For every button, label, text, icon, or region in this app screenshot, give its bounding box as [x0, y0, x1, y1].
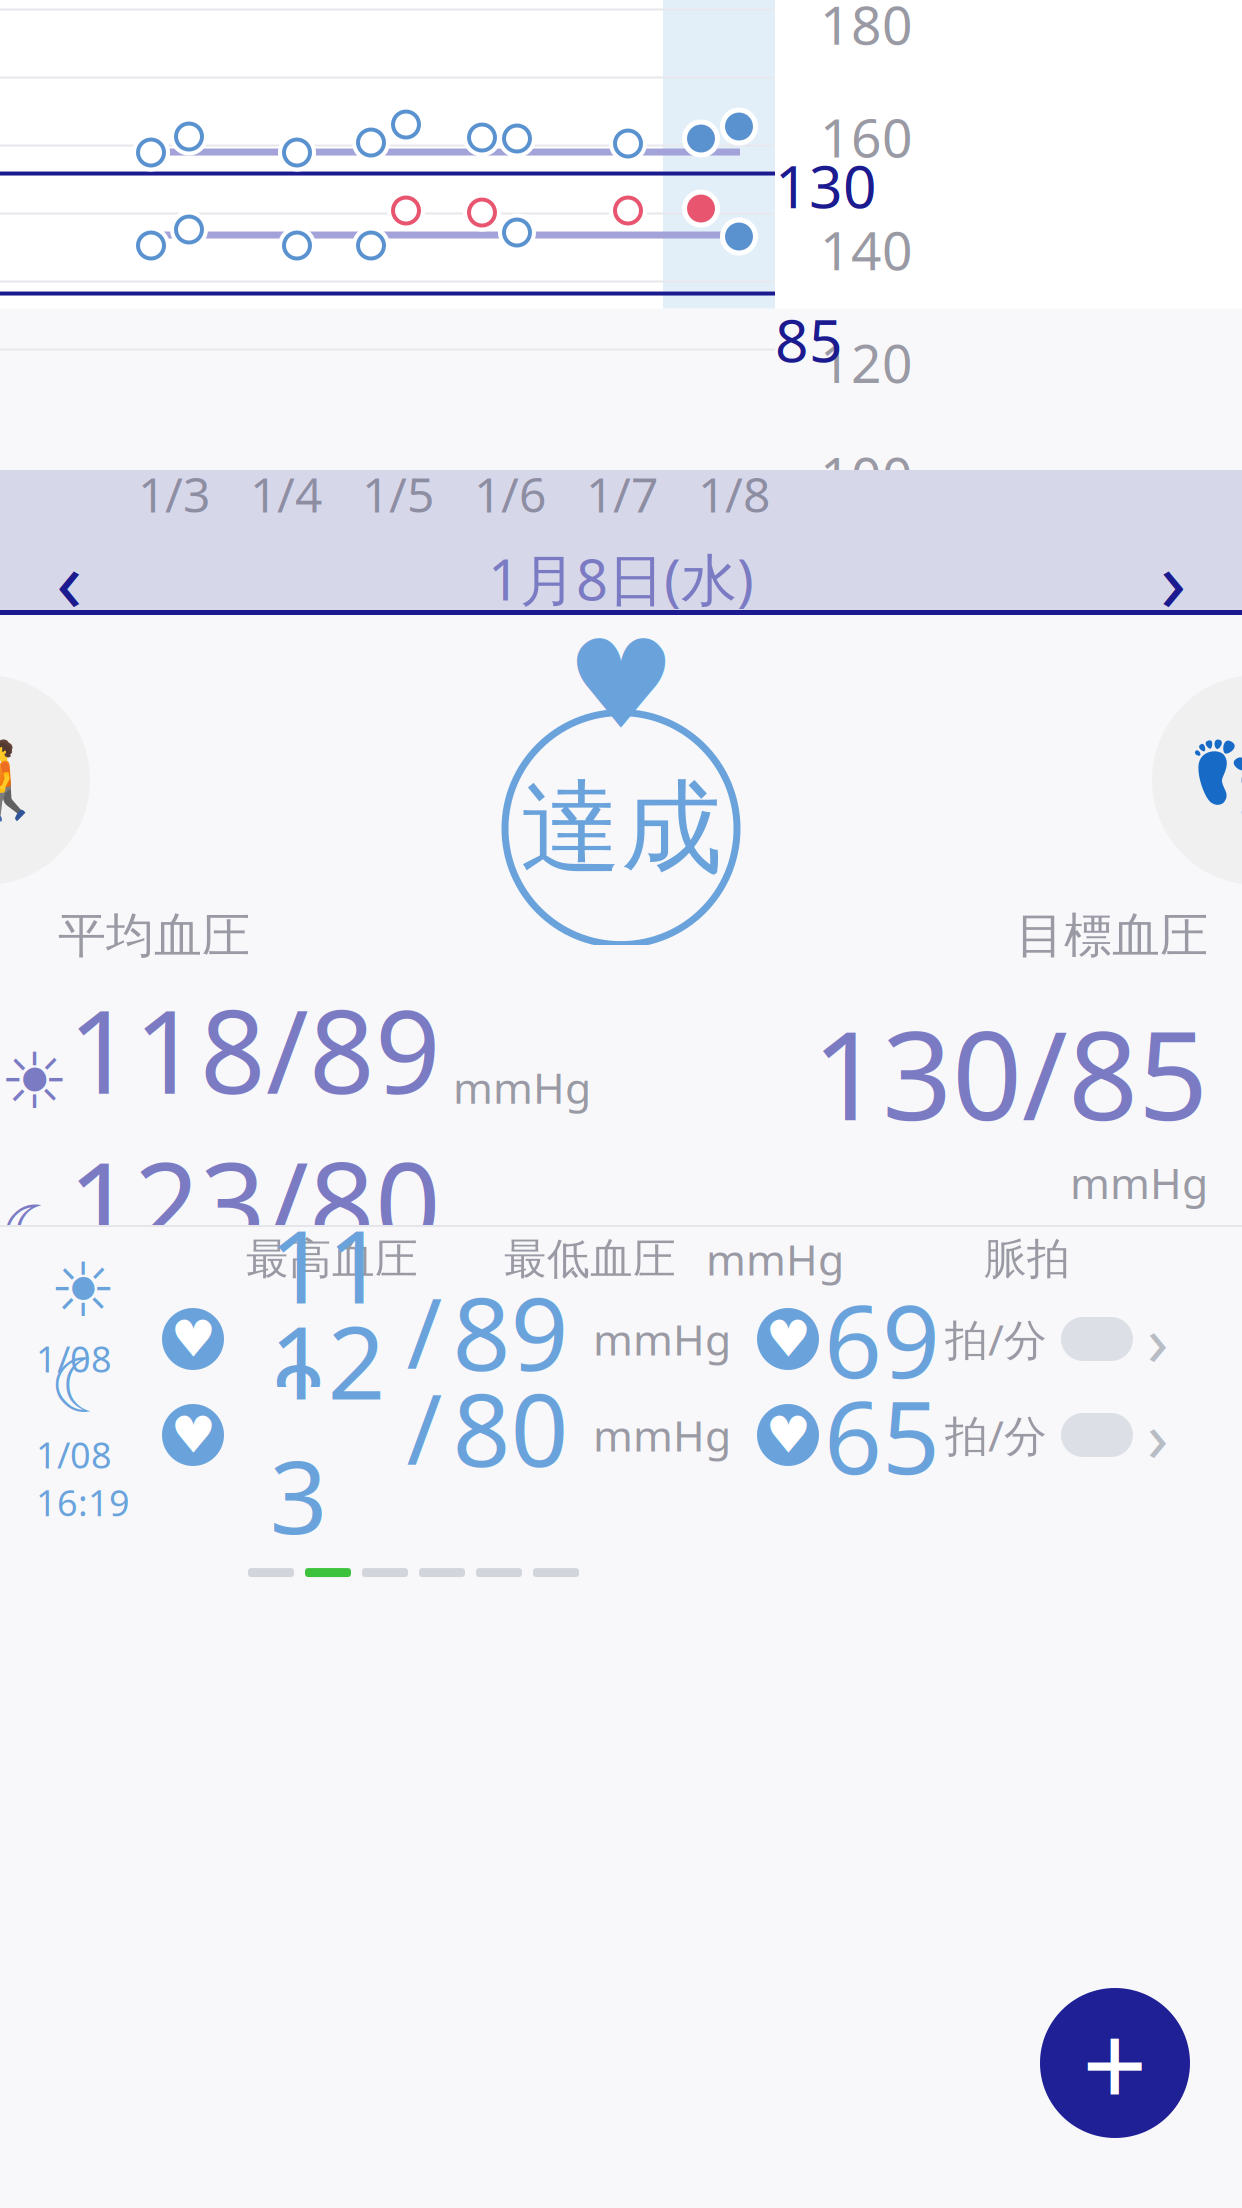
staticText: 69 [824, 1272, 940, 1406]
staticText: 最低血圧 [504, 1233, 676, 1285]
staticText: 85 [775, 300, 843, 378]
staticText: 拍/分 [945, 1407, 1047, 1463]
staticText: 最高血圧 [246, 1233, 418, 1285]
staticText: 1/08 13:00 [36, 1335, 130, 1430]
staticText: 123/80 [68, 1125, 441, 1278]
staticText: mmHg [593, 1407, 731, 1463]
staticText: 1/3 [138, 462, 210, 526]
staticText: 目標血圧 [1016, 906, 1208, 965]
staticText: 160 [820, 101, 913, 172]
staticText: › [1160, 522, 1186, 635]
staticText: 65 [824, 1368, 940, 1502]
staticText: 123 [269, 1293, 385, 1562]
button[interactable]: ☾ [0, 1387, 1242, 1483]
staticText: ☀ [49, 1248, 116, 1332]
staticText: 120 [820, 327, 913, 398]
staticText: 80 [452, 1360, 568, 1495]
staticText: mmHg [706, 1231, 844, 1287]
staticText: 1/4 [250, 462, 322, 526]
staticText: 1/8 [698, 462, 770, 526]
staticText: + [1082, 1987, 1148, 2139]
staticText: / [406, 1364, 442, 1491]
staticText: 130 [775, 146, 877, 224]
staticText: 140 [820, 214, 913, 285]
staticText: 89 [452, 1264, 568, 1399]
staticText: mmHg [593, 1311, 731, 1367]
staticText: mmHg [453, 1211, 591, 1268]
button[interactable]: Add reading [1040, 1988, 1190, 2138]
staticText: / [406, 1268, 442, 1395]
staticText: ‹ [56, 522, 82, 635]
staticText: 118 [269, 1197, 385, 1466]
staticText: 1/08 16:19 [36, 1431, 130, 1526]
staticText: ♥ [170, 1310, 215, 1368]
staticText: Twitter [55, 0, 185, 48]
staticText: ◀ [22, 2, 49, 42]
staticText: 1月8日(水) [488, 542, 754, 616]
staticText: 1/5 [362, 462, 434, 526]
staticText: ☀ [0, 1038, 68, 1125]
staticText: mmHg [453, 1059, 591, 1115]
button[interactable]: Next day [1118, 534, 1228, 624]
staticText: ☾ [0, 1190, 68, 1278]
staticText: 脈拍 [984, 1233, 1070, 1285]
staticText: 180 [820, 0, 913, 59]
button[interactable]: ☀ [0, 1291, 1242, 1387]
staticText: 16:24 [660, 0, 767, 50]
staticText: ▲ [249, 5, 272, 39]
button[interactable]: Previous day [14, 534, 124, 624]
staticText: 100 [820, 440, 913, 511]
staticText: 👣 [1188, 737, 1242, 823]
staticText: ♥ [765, 1406, 810, 1464]
staticText: 平均血圧 [58, 906, 250, 965]
staticText: ♥ [566, 615, 676, 755]
staticText: ♥ [765, 1310, 810, 1368]
staticText: › [1147, 1389, 1168, 1481]
staticText: 1/7 [586, 462, 658, 526]
staticText: ☾ [49, 1344, 116, 1428]
staticText: 130/85 [812, 991, 1208, 1154]
staticText: 拍/分 [945, 1311, 1047, 1367]
staticText: › [1147, 1293, 1168, 1385]
staticText: mmHg [1070, 1154, 1208, 1211]
staticText: 118/89 [68, 973, 441, 1125]
staticText: 🚶 [0, 737, 54, 823]
staticText: ♥ [170, 1406, 215, 1464]
staticText: 達成 [520, 766, 722, 891]
staticText: 1/6 [474, 462, 546, 526]
staticText: 80 [820, 553, 882, 623]
staticText: 血圧 デイリー [433, 56, 808, 128]
